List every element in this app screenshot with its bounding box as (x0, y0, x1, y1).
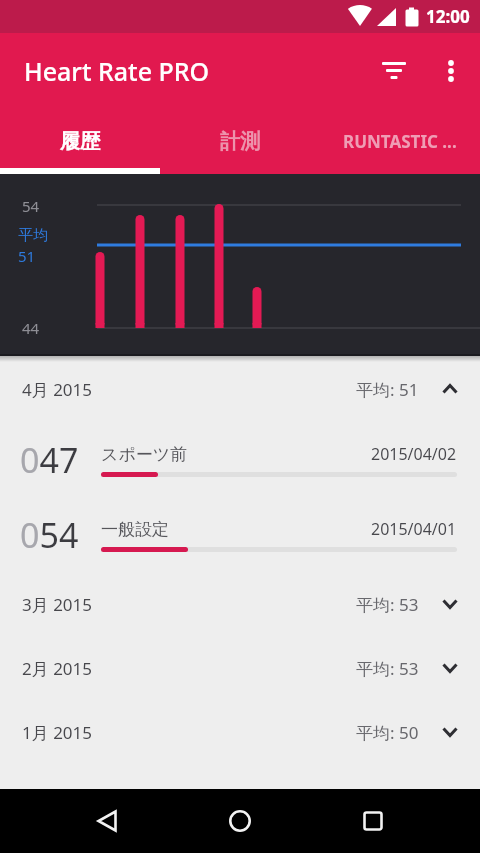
staticText: 2月 2015 (22, 657, 93, 680)
button[interactable] (205, 789, 275, 853)
staticText: 平均: 53 (356, 657, 419, 680)
staticText: 平均 (18, 226, 48, 245)
button[interactable] (371, 47, 417, 95)
staticText: 履歴 (60, 129, 100, 154)
staticText: 2015/04/01 (371, 518, 457, 540)
button[interactable]: RUNTASTIC ... (320, 108, 480, 174)
button[interactable] (430, 47, 472, 95)
staticText: 計測 (220, 129, 260, 154)
button[interactable]: 2月 2015 (0, 636, 480, 700)
staticText: 4月 2015 (22, 378, 93, 401)
staticText: RUNTASTIC ... (343, 130, 457, 153)
staticText: 平均: 51 (356, 378, 419, 401)
staticText: 54 (22, 196, 40, 216)
staticText: 51 (18, 246, 36, 266)
staticText: 2015/04/02 (371, 443, 457, 465)
staticText: 047 (20, 437, 79, 483)
staticText: 一般設定 (101, 519, 169, 540)
staticText: 平均: 50 (356, 721, 419, 744)
button[interactable]: 3月 2015 (0, 572, 480, 636)
staticText: 平均: 53 (356, 593, 419, 616)
button[interactable] (72, 789, 142, 853)
staticText: Heart Rate PRO (24, 54, 210, 88)
button[interactable]: 054 (0, 497, 480, 572)
button[interactable] (338, 789, 408, 853)
staticText: 054 (20, 512, 79, 558)
button[interactable]: 1月 2015 (0, 700, 480, 764)
staticText: スポーツ前 (101, 444, 188, 465)
staticText: 3月 2015 (22, 593, 93, 616)
button[interactable]: 4月 2015 (0, 356, 480, 422)
button[interactable]: 047 (0, 422, 480, 497)
button[interactable]: 履歴 (0, 108, 160, 174)
staticText: 12:00 (426, 5, 470, 28)
staticText: 1月 2015 (22, 721, 93, 744)
staticText: 44 (22, 318, 40, 338)
button[interactable]: 計測 (160, 108, 320, 174)
